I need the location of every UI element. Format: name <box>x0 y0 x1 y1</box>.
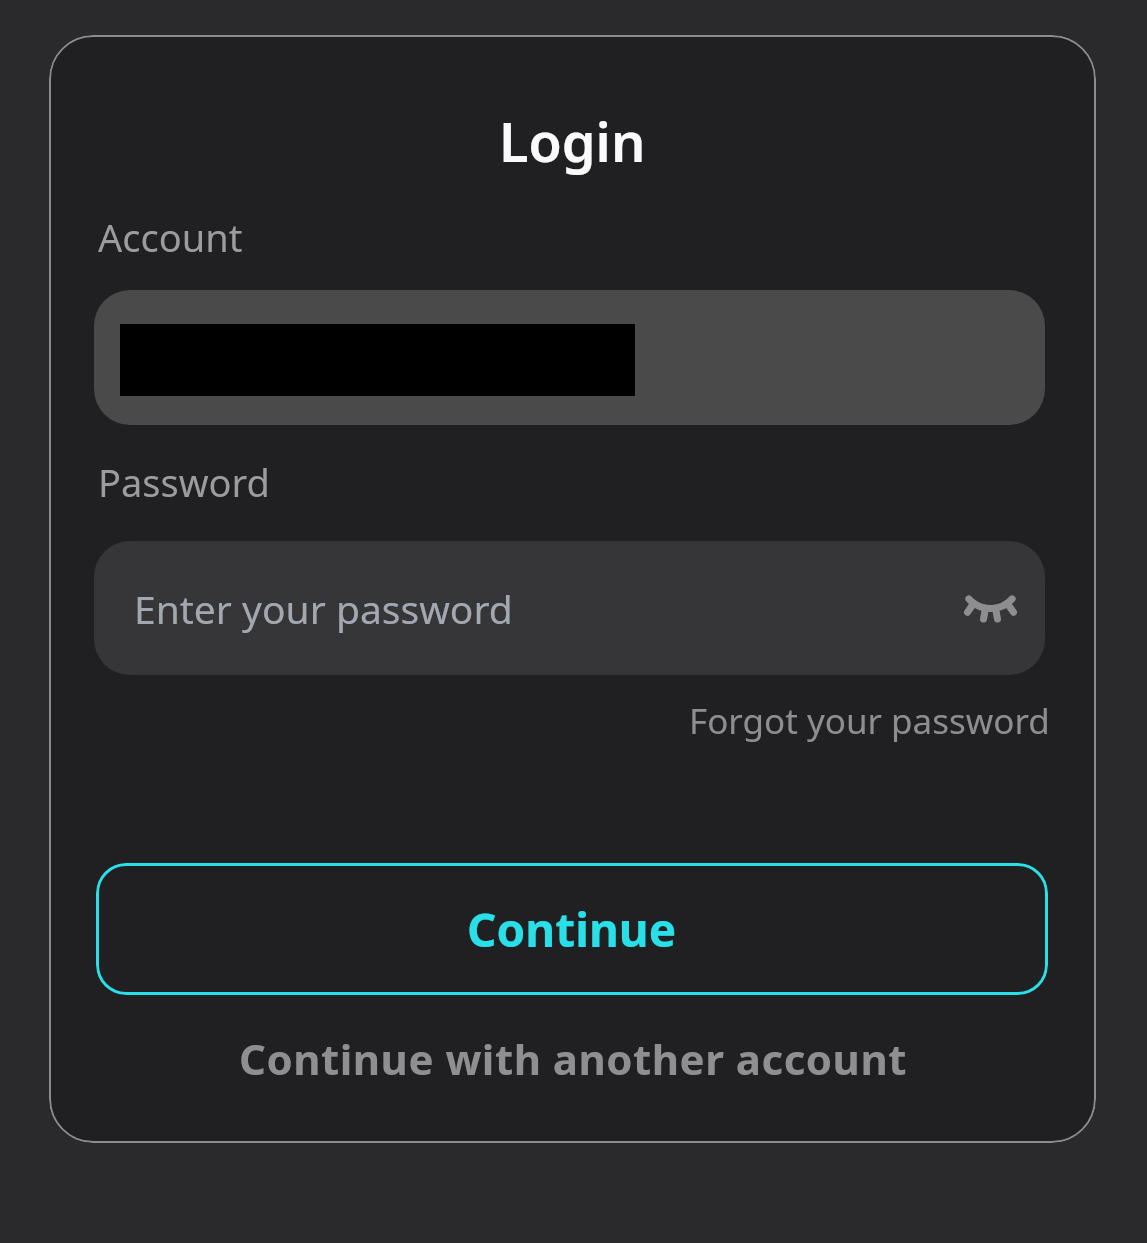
staticText: Enter your password <box>134 582 513 635</box>
button[interactable]: Forgot your password <box>689 697 1050 745</box>
staticText: Password <box>98 456 270 508</box>
staticText: Login <box>499 104 646 178</box>
staticText: Account <box>98 211 243 263</box>
button[interactable]: Continue <box>96 863 1048 995</box>
button[interactable] <box>967 593 1014 623</box>
button[interactable]: Enter your password <box>94 541 1045 675</box>
staticText: Continue <box>467 898 677 961</box>
button[interactable] <box>94 290 1045 425</box>
button[interactable]: Continue with another account <box>239 1030 907 1087</box>
